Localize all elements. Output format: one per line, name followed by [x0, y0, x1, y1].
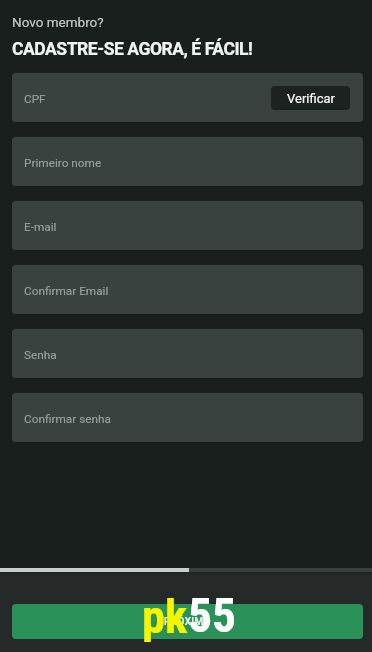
- button[interactable]: CPF: [12, 73, 363, 122]
- staticText: 55: [188, 588, 237, 644]
- button[interactable]: Verificar: [271, 86, 350, 110]
- staticText: CADASTRE-SE AGORA, É FÁCIL!: [12, 39, 253, 60]
- staticText: Primeiro nome: [24, 156, 102, 170]
- staticText: E-mail: [24, 220, 57, 234]
- staticText: Confirmar senha: [24, 412, 111, 426]
- button[interactable]: E-mail: [12, 201, 363, 250]
- staticText: Confirmar Email: [24, 284, 109, 298]
- staticText: Novo membro?: [12, 14, 104, 30]
- button[interactable]: Confirmar Email: [12, 265, 363, 314]
- button[interactable]: Senha: [12, 329, 363, 378]
- button[interactable]: PRÓXIMO: [12, 604, 363, 639]
- staticText: PRÓXIMO: [164, 616, 212, 628]
- staticText: CPF: [24, 92, 46, 106]
- staticText: Senha: [24, 348, 57, 362]
- staticText: Verificar: [287, 91, 335, 106]
- button[interactable]: Primeiro nome: [12, 137, 363, 186]
- button[interactable]: Confirmar senha: [12, 393, 363, 442]
- staticText: pk: [142, 590, 188, 644]
